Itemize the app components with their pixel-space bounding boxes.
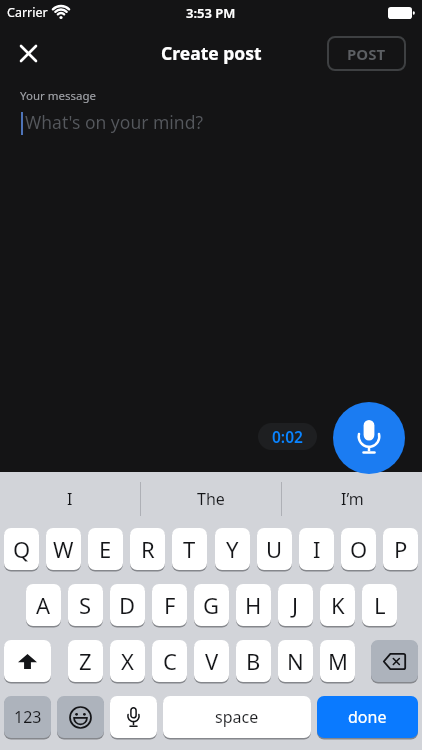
button[interactable] xyxy=(57,696,104,738)
staticText: 123 xyxy=(14,706,42,728)
button[interactable]: K xyxy=(320,584,355,626)
staticText: POST xyxy=(347,44,386,64)
staticText: K xyxy=(331,590,345,620)
button[interactable]: A xyxy=(26,584,61,626)
staticText: Q xyxy=(13,534,31,564)
button[interactable]: T xyxy=(172,528,207,570)
button[interactable] xyxy=(13,38,43,68)
staticText: space xyxy=(215,706,259,728)
button[interactable]: F xyxy=(152,584,187,626)
staticText: D xyxy=(119,590,136,620)
staticText: I xyxy=(67,488,73,510)
button[interactable] xyxy=(110,696,157,738)
button[interactable] xyxy=(4,640,51,682)
staticText: I xyxy=(313,534,321,564)
button[interactable]: J xyxy=(278,584,313,626)
button[interactable]: L xyxy=(362,584,397,626)
staticText: M xyxy=(328,646,348,676)
staticText: O xyxy=(350,534,368,564)
staticText: I’m xyxy=(341,488,364,510)
staticText: Z xyxy=(79,646,92,676)
staticText: W xyxy=(53,534,74,564)
button[interactable]: The xyxy=(141,488,281,510)
staticText: G xyxy=(203,590,220,620)
staticText: What's on your mind? xyxy=(25,110,204,134)
staticText: 0:02 xyxy=(272,426,303,447)
button[interactable]: M xyxy=(320,640,355,682)
button[interactable]: Q xyxy=(4,528,39,570)
button[interactable]: B xyxy=(236,640,271,682)
staticText: X xyxy=(121,646,134,676)
button[interactable]: Z xyxy=(68,640,103,682)
staticText: C xyxy=(163,646,177,676)
button[interactable]: S xyxy=(68,584,103,626)
button[interactable]: R xyxy=(130,528,165,570)
button[interactable]: D xyxy=(110,584,145,626)
button[interactable]: C xyxy=(152,640,187,682)
button[interactable] xyxy=(333,402,405,474)
staticText: done xyxy=(348,706,387,728)
staticText: Y xyxy=(226,534,239,564)
button[interactable]: P xyxy=(383,528,418,570)
button[interactable]: O xyxy=(341,528,376,570)
button[interactable]: W xyxy=(46,528,81,570)
button[interactable]: G xyxy=(194,584,229,626)
staticText: U xyxy=(266,534,283,564)
staticText: E xyxy=(99,534,112,564)
staticText: Your message xyxy=(20,88,97,104)
staticText: 3:53 PM xyxy=(186,4,236,22)
button[interactable]: I xyxy=(299,528,334,570)
staticText: The xyxy=(197,488,225,510)
staticText: Carrier xyxy=(7,4,48,21)
button[interactable]: 123 xyxy=(4,696,51,738)
staticText: Create post xyxy=(161,41,262,65)
staticText: B xyxy=(246,646,261,676)
button[interactable]: I xyxy=(0,488,140,510)
button[interactable]: POST xyxy=(327,36,406,71)
staticText: L xyxy=(374,590,386,620)
staticText: F xyxy=(164,590,176,620)
button[interactable]: N xyxy=(278,640,313,682)
staticText: J xyxy=(292,590,299,620)
button[interactable]: X xyxy=(110,640,145,682)
button[interactable]: done xyxy=(317,696,418,738)
staticText: N xyxy=(287,646,304,676)
button[interactable]: space xyxy=(163,696,311,738)
button[interactable]: I’m xyxy=(282,488,422,510)
staticText: R xyxy=(141,534,155,564)
button[interactable] xyxy=(371,640,418,682)
staticText: V xyxy=(205,646,219,676)
staticText: S xyxy=(79,590,92,620)
staticText: A xyxy=(36,590,51,620)
button[interactable]: V xyxy=(194,640,229,682)
button[interactable]: Y xyxy=(215,528,250,570)
staticText: P xyxy=(394,534,408,564)
staticText: T xyxy=(183,534,196,564)
button[interactable]: U xyxy=(257,528,292,570)
button[interactable]: H xyxy=(236,584,271,626)
button[interactable]: E xyxy=(88,528,123,570)
staticText: H xyxy=(245,590,262,620)
